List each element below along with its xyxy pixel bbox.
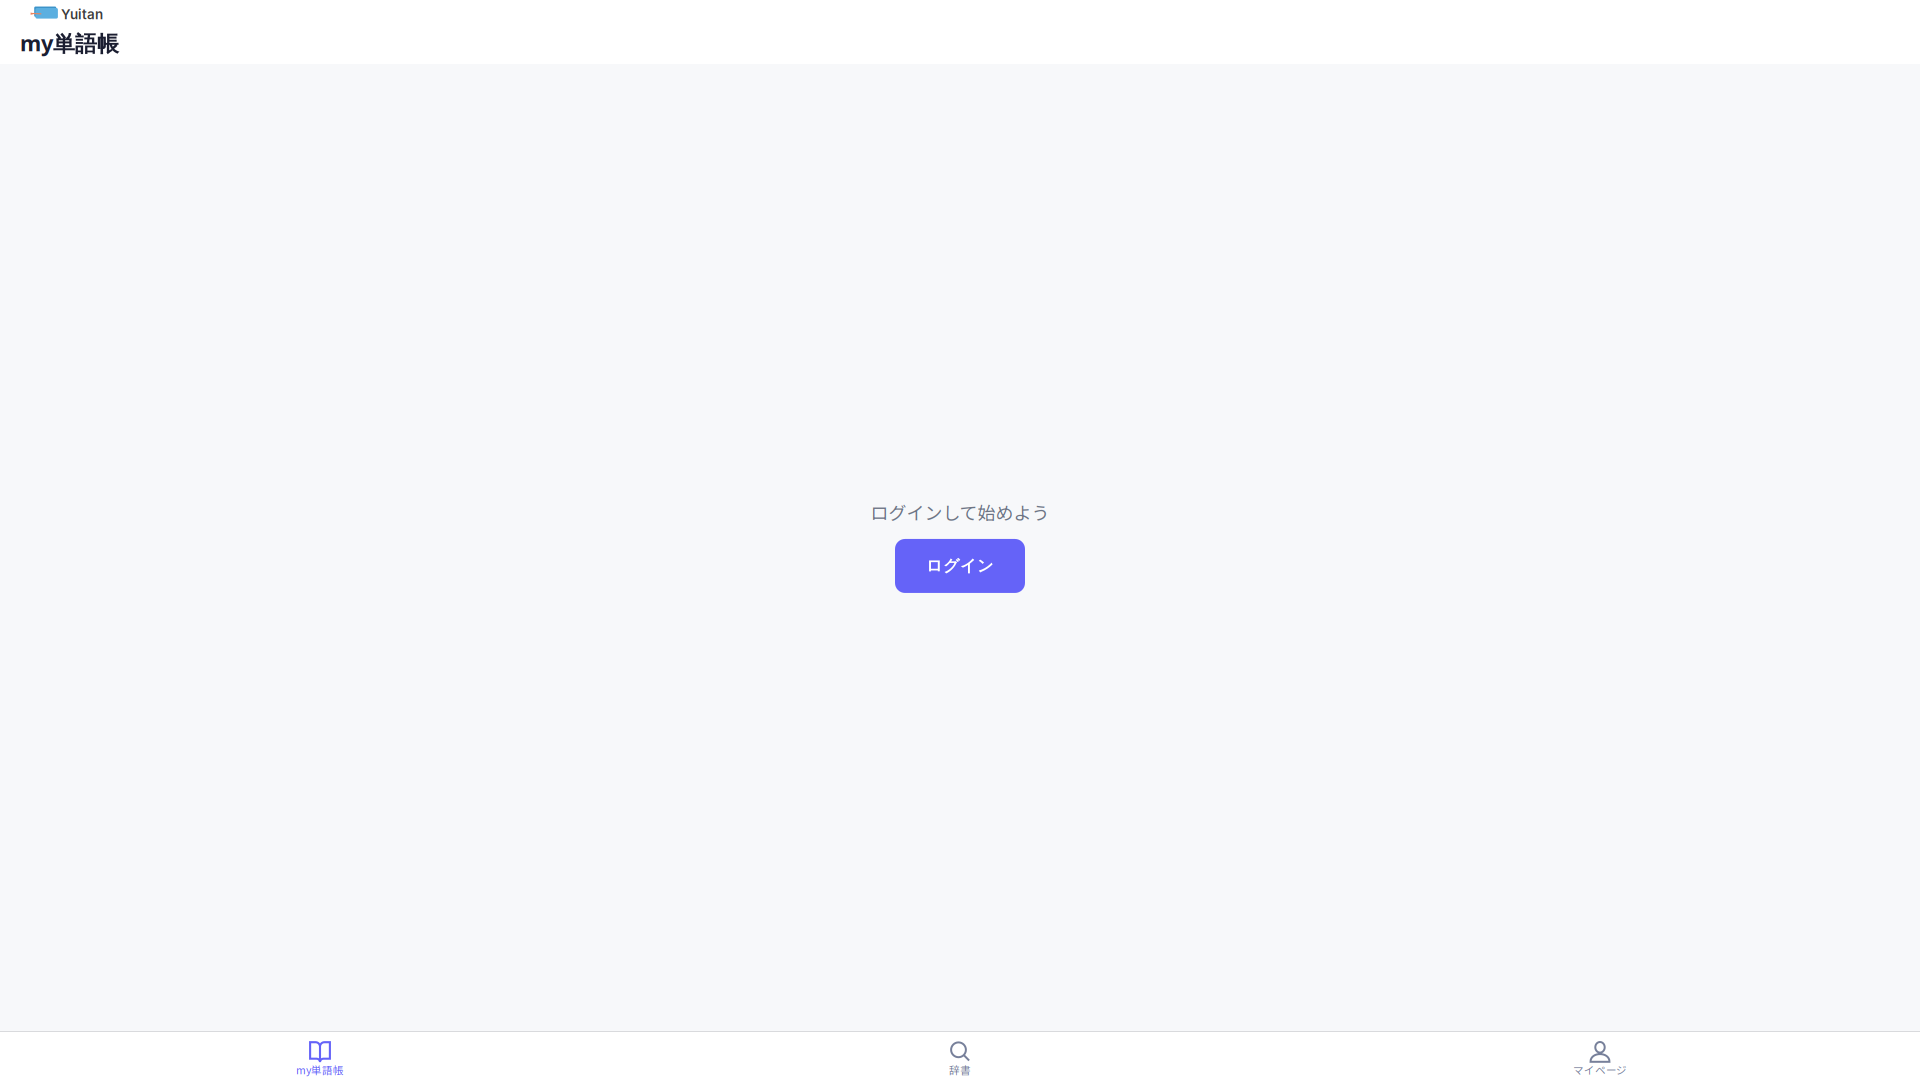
button[interactable]: マイページ	[1280, 1032, 1920, 1080]
staticText: 辞書	[949, 1062, 971, 1077]
staticText: ログイン	[926, 556, 994, 576]
staticText: my単語帳	[296, 1062, 344, 1077]
staticText: my単語帳	[20, 28, 119, 58]
staticText: マイページ	[1573, 1062, 1627, 1077]
button[interactable]: 辞書	[640, 1032, 1280, 1080]
staticText: Yuitan	[61, 6, 103, 23]
staticText: ログインして始めよう	[870, 499, 1049, 525]
button[interactable]: ログイン	[895, 539, 1025, 593]
button[interactable]: my単語帳	[0, 1032, 640, 1080]
